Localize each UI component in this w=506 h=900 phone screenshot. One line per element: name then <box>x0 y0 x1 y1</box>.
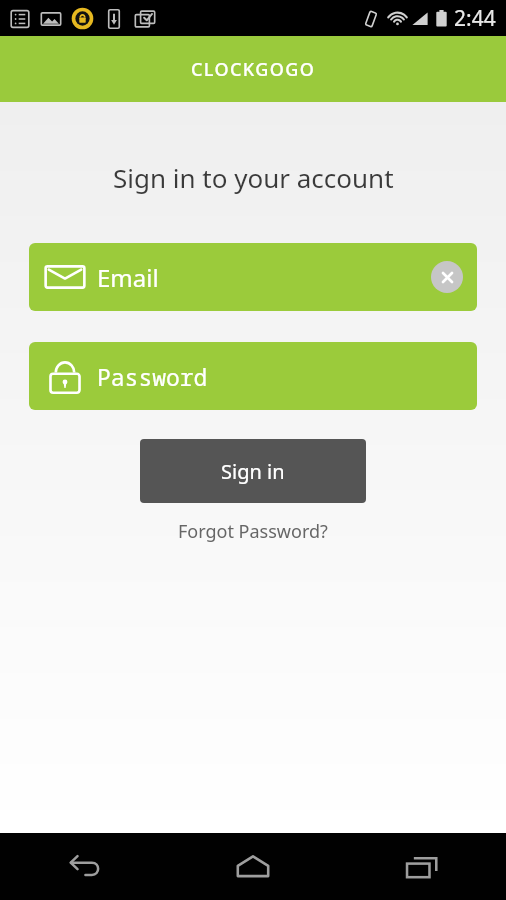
staticText: Password <box>97 361 208 392</box>
button[interactable]: Back <box>0 833 168 900</box>
staticText: 2:44 <box>454 4 496 33</box>
button[interactable]: Clear email <box>431 261 463 293</box>
staticText: Forgot Password? <box>178 519 328 544</box>
button[interactable]: Recent apps <box>337 833 506 900</box>
button[interactable]: Sign in <box>140 439 366 503</box>
staticText: Sign in to your account <box>113 160 394 195</box>
button[interactable]: Email <box>29 243 477 311</box>
button[interactable]: Password <box>29 342 477 410</box>
staticText: Email <box>97 261 159 294</box>
staticText: CLOCKGOGO <box>191 57 316 82</box>
button[interactable]: Home <box>168 833 337 900</box>
staticText: Sign in <box>221 458 285 485</box>
button[interactable]: Forgot Password? <box>170 516 336 547</box>
